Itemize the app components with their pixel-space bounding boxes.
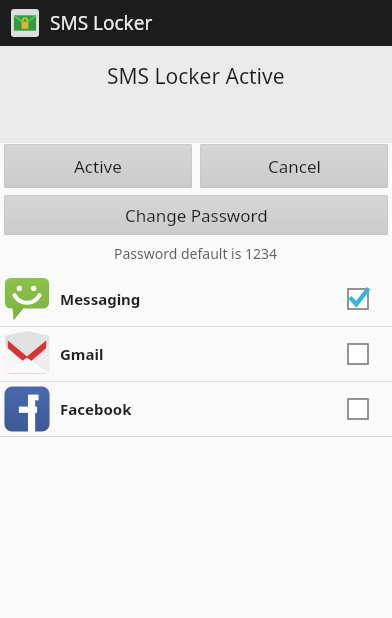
button[interactable]: Checked (347, 288, 369, 310)
staticText: SMS Locker Active (107, 62, 285, 91)
staticText: Cancel (268, 155, 321, 178)
staticText: Change Password (125, 204, 268, 227)
button[interactable]: Change Password (4, 195, 388, 235)
button[interactable]: Active (4, 144, 192, 188)
staticText: Gmail (60, 344, 104, 364)
button[interactable]: Unchecked (347, 398, 369, 420)
button[interactable]: Gmail (0, 327, 392, 381)
staticText: Messaging (60, 289, 141, 309)
button[interactable]: Facebook (0, 382, 392, 436)
button[interactable]: Cancel (200, 144, 388, 188)
button[interactable]: Messaging (0, 272, 392, 326)
staticText: SMS Locker (50, 10, 153, 36)
button[interactable]: Unchecked (347, 343, 369, 365)
staticText: Active (74, 155, 122, 178)
staticText: Facebook (60, 399, 132, 419)
staticText: Password default is 1234 (114, 244, 278, 263)
